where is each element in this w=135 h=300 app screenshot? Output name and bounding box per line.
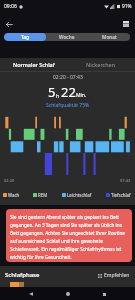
staticText: 07:43 [120, 178, 131, 183]
staticText: Schlafphase [5, 271, 40, 279]
staticText: 5 [48, 83, 56, 101]
staticText: Sie sind gestern Abend später als geplan… [10, 214, 129, 260]
button[interactable]: Recent apps [98, 288, 110, 300]
staticText: Woche [59, 34, 75, 41]
button[interactable]: Woche [46, 33, 88, 41]
button[interactable]: Empfehlen [98, 272, 130, 279]
staticText: Monat [102, 34, 117, 41]
staticText: 02:20 [4, 178, 15, 183]
button[interactable]: Tag [4, 33, 46, 41]
staticText: Tiefschlaf [111, 192, 131, 198]
button[interactable]: Sie sind gestern Abend später als geplan… [6, 209, 132, 262]
staticText: 02:20 - 07:43 [53, 74, 83, 81]
button[interactable]: Nickerchen [67, 59, 135, 72]
staticText: Empfehlen [104, 272, 130, 279]
button[interactable]: Monat [88, 33, 130, 41]
staticText: Min. [76, 92, 87, 99]
staticText: Nickerchen [86, 61, 116, 68]
button[interactable]: Back [25, 288, 37, 300]
button[interactable]: Calendar [119, 17, 133, 31]
button[interactable]: Normaler Schlaf [0, 59, 67, 72]
button[interactable]: Home [62, 288, 74, 300]
staticText: Schlafqualität 75% [46, 102, 90, 109]
staticText: Wach [8, 192, 20, 198]
button[interactable]: Back [2, 17, 16, 31]
staticText: 91% [122, 3, 132, 10]
staticText: 09:06 [4, 3, 17, 10]
staticText: Tag [21, 34, 30, 41]
staticText: 22 [61, 83, 76, 101]
staticText: Leichtschlaf [67, 192, 92, 198]
staticText: Normaler Schlaf [13, 61, 55, 68]
staticText: REM [38, 192, 48, 198]
staticText: h [56, 92, 60, 99]
